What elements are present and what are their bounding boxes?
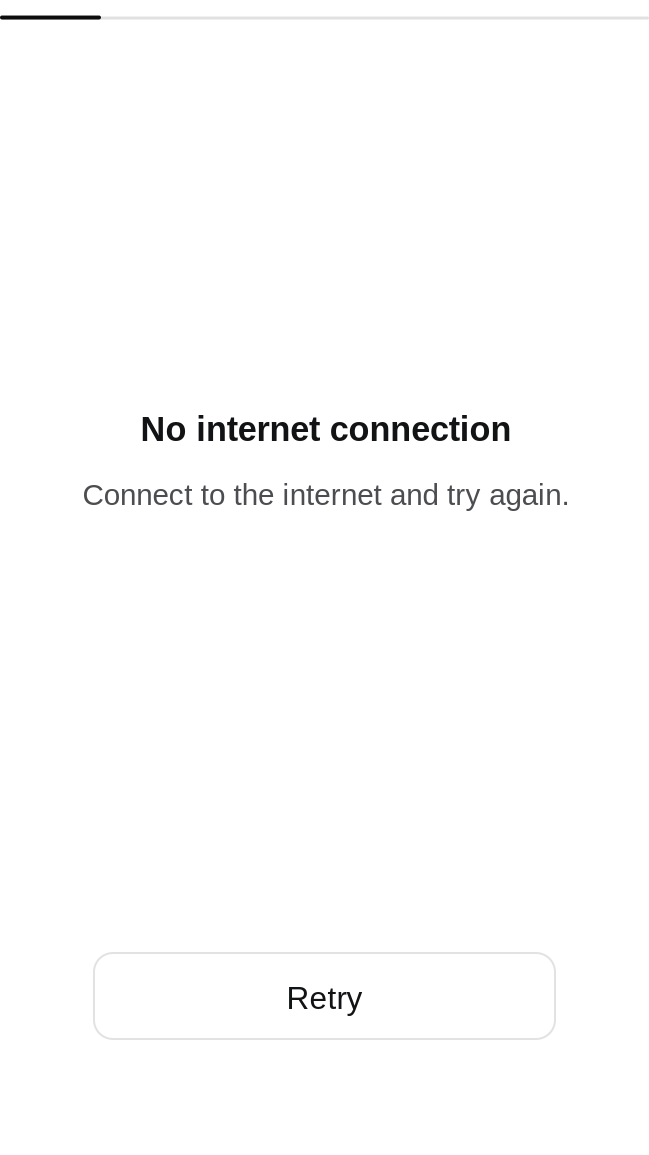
staticText: Connect to the internet and try again.: [82, 478, 569, 511]
button[interactable]: Retry: [94, 953, 555, 1039]
staticText: Retry: [286, 980, 362, 1016]
staticText: No internet connection: [141, 410, 511, 448]
